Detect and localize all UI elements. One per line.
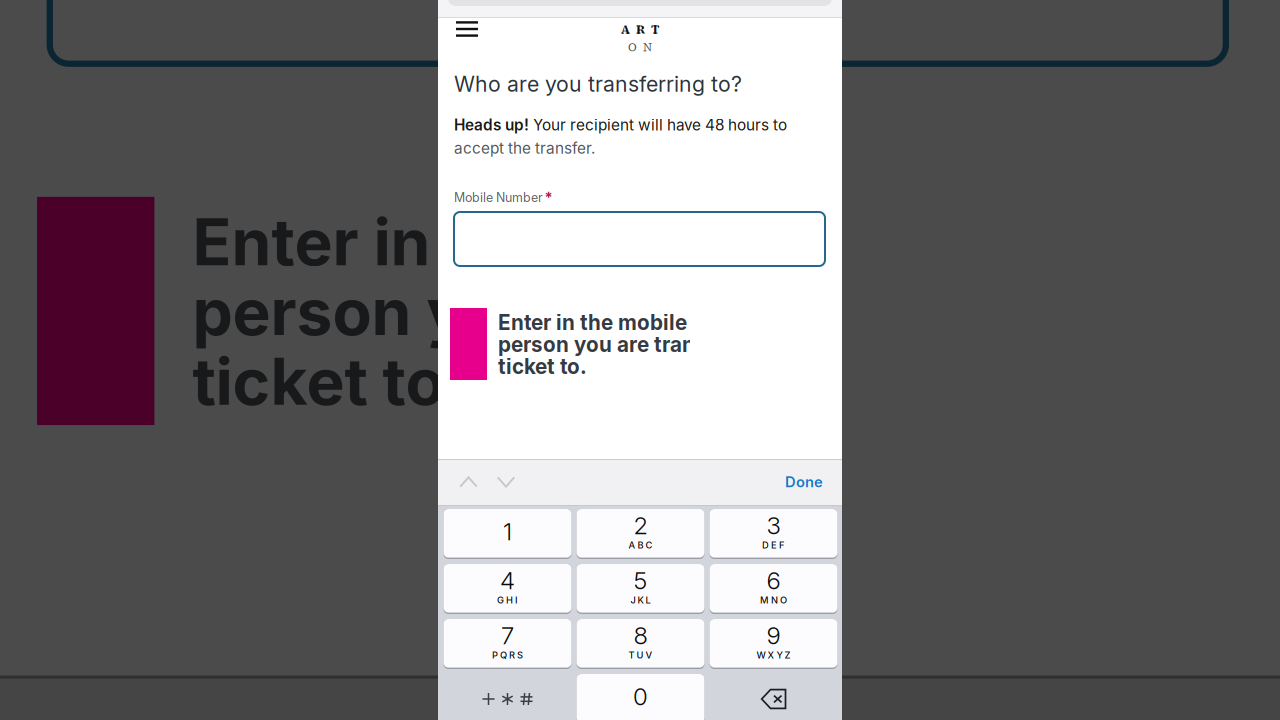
staticText: ticket to.	[498, 354, 587, 379]
staticText: person you are transferring the	[192, 273, 1163, 350]
staticText: 5	[633, 566, 647, 595]
button[interactable]: 7	[443, 619, 571, 669]
button[interactable]: 8	[576, 619, 704, 669]
staticText: A R T	[621, 21, 659, 37]
staticText: O N	[628, 39, 652, 55]
staticText: Mobile Number	[454, 190, 543, 205]
staticText: Heads up! Your recipient will have 48 ho…	[454, 116, 787, 134]
button[interactable]: Done	[751, 460, 823, 503]
staticText: person you are transferring the	[498, 332, 814, 357]
button[interactable]: 5	[576, 564, 704, 614]
staticText: *	[544, 188, 552, 206]
staticText: Enter in the mobile number of the	[192, 203, 1224, 281]
staticText: 6	[766, 566, 780, 595]
staticText: 2	[633, 511, 647, 540]
staticText: Enter in the mobile number of the	[498, 310, 834, 335]
staticText: M N O	[760, 594, 787, 606]
staticText: 1	[503, 517, 512, 546]
staticText: 9	[766, 621, 780, 650]
staticText: 7	[501, 621, 514, 650]
button[interactable]: 0	[576, 674, 704, 720]
button[interactable]: 3	[709, 509, 837, 559]
staticText: J K L	[630, 594, 650, 606]
staticText: G H I	[497, 594, 518, 606]
button[interactable]: 9	[709, 619, 837, 669]
staticText: A B C	[628, 539, 652, 551]
staticText: accept the transfer.	[454, 139, 595, 158]
staticText: W X Y Z	[756, 649, 790, 661]
button[interactable]: Symbols	[443, 674, 571, 720]
button[interactable]: 1	[443, 509, 571, 559]
button[interactable]: 6	[709, 564, 837, 614]
button[interactable]: Next field	[486, 460, 526, 503]
button[interactable]: Delete	[709, 674, 837, 720]
button[interactable]: Previous field	[448, 460, 488, 503]
staticText: Done	[785, 473, 823, 491]
staticText: D E F	[762, 539, 785, 551]
staticText: 8	[633, 621, 647, 650]
button[interactable]: Menu	[438, 0, 482, 34]
staticText: 0	[633, 682, 648, 711]
staticText: Who are you transferring to?	[454, 71, 742, 97]
staticText: P Q R S	[492, 649, 523, 661]
staticText: 3	[766, 511, 780, 540]
staticText: T U V	[628, 649, 652, 661]
staticText: ticket to.	[192, 343, 465, 420]
button[interactable]: 4	[443, 564, 571, 614]
button[interactable]: 2	[576, 509, 704, 559]
staticText: 4	[500, 566, 515, 595]
